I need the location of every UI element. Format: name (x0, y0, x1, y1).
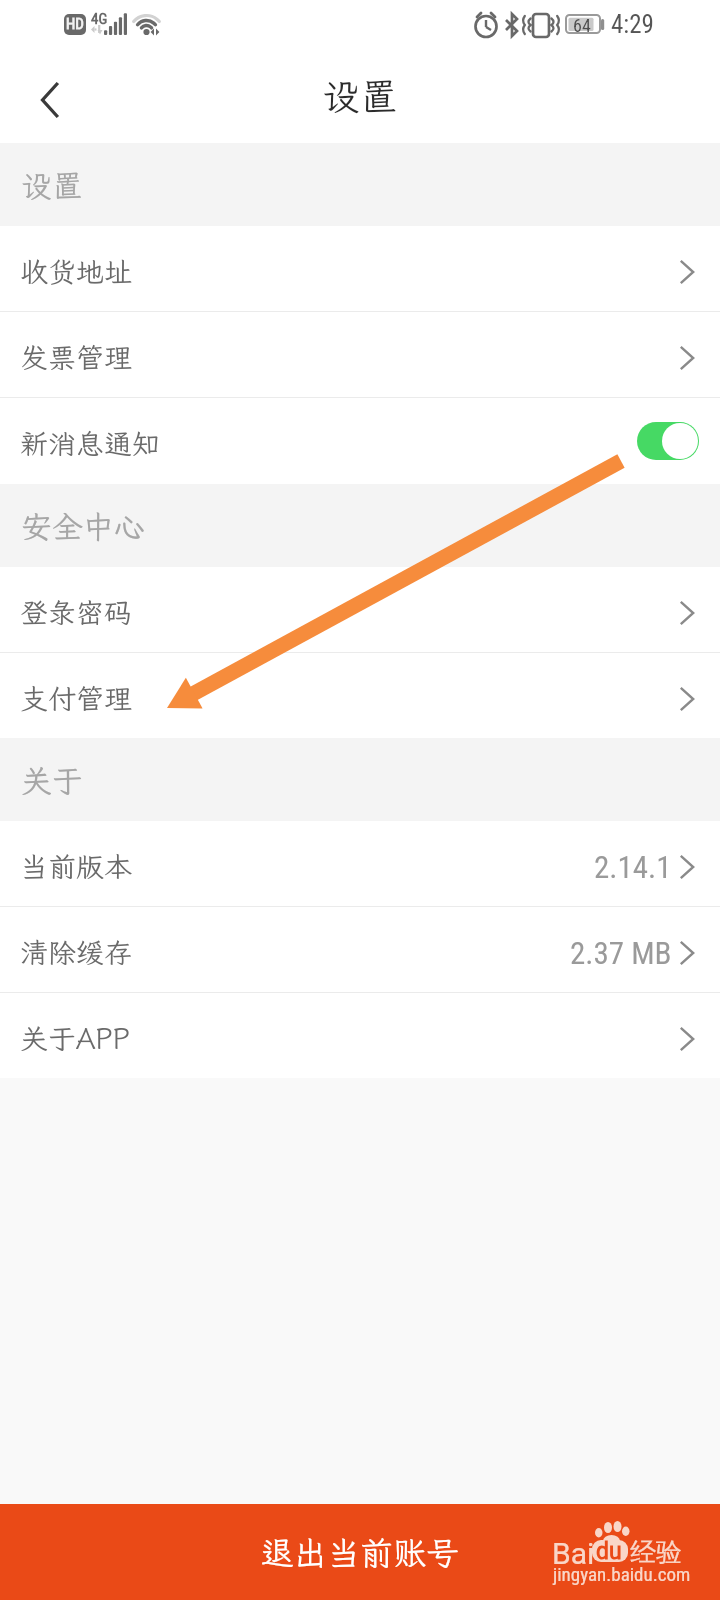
staticText: 清除缓存 (20, 934, 133, 971)
staticText: 4:29 (611, 10, 654, 39)
button[interactable]: 当前版本 (0, 821, 720, 907)
staticText: 新消息通知 (20, 425, 161, 462)
staticText: 登录密码 (20, 594, 133, 631)
button[interactable]: 登录密码 (0, 567, 720, 653)
button[interactable]: 关于APP (0, 993, 720, 1078)
staticText: 设置 (322, 71, 399, 121)
button[interactable]: 发票管理 (0, 312, 720, 398)
staticText: 当前版本 (20, 848, 133, 885)
staticText: 经验 (630, 1536, 682, 1569)
button[interactable]: 收货地址 (0, 226, 720, 312)
staticText: 关于 (21, 760, 83, 801)
staticText: 安全中心 (21, 506, 145, 547)
button[interactable]: 退出当前账号 (0, 1504, 720, 1600)
staticText: 支付管理 (20, 680, 133, 717)
button[interactable]: 新消息通知 (0, 398, 720, 484)
staticText: 2.37 MB (570, 935, 672, 971)
button[interactable]: Back (0, 56, 100, 143)
button[interactable]: 支付管理 (0, 653, 720, 738)
staticText: 关于APP (20, 1020, 130, 1057)
staticText: HD (66, 15, 84, 33)
staticText: du (596, 1538, 622, 1565)
staticText: jingyan.baidu.com (553, 1563, 691, 1585)
staticText: 4G (91, 10, 108, 28)
staticText: 64 (573, 15, 591, 36)
staticText: 2.14.1 (594, 849, 672, 885)
staticText: 退出当前账号 (261, 1531, 459, 1574)
staticText: 设置 (21, 165, 83, 206)
button[interactable]: 清除缓存 (0, 907, 720, 993)
staticText: Bai (552, 1536, 595, 1571)
staticText: 发票管理 (20, 339, 133, 376)
staticText: 收货地址 (20, 253, 133, 290)
